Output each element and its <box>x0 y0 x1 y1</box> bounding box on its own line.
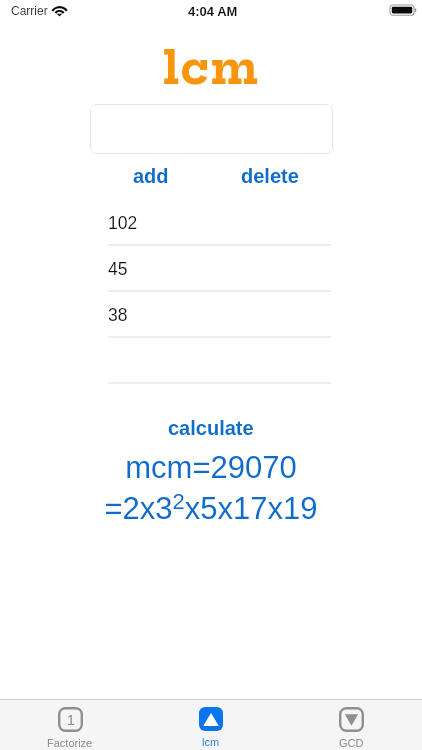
staticText: =2x32x5x17x19 <box>104 489 318 526</box>
button[interactable]: calculate <box>151 414 271 442</box>
button[interactable]: 45 <box>108 246 331 292</box>
button[interactable] <box>108 338 331 384</box>
button[interactable] <box>90 104 333 154</box>
staticText: Carrier <box>11 4 48 17</box>
staticText: lcm <box>163 41 260 95</box>
staticText: 1 <box>67 712 75 728</box>
staticText: 45 <box>108 259 128 279</box>
button[interactable]: delete <box>230 163 310 189</box>
staticText: 38 <box>108 305 128 325</box>
staticText: 4:04 AM <box>188 4 238 19</box>
button[interactable]: 38 <box>108 292 331 338</box>
other: lcm <box>199 707 223 731</box>
staticText: 102 <box>108 213 138 233</box>
staticText: Factorize <box>47 737 93 749</box>
other: GCD <box>339 707 364 732</box>
button[interactable]: 1 <box>0 700 140 750</box>
button[interactable]: lcm <box>140 700 281 750</box>
button[interactable]: GCD <box>281 700 422 750</box>
staticText: GCD <box>339 737 364 749</box>
staticText: mcm=29070 <box>125 450 297 485</box>
staticText: add <box>133 165 169 187</box>
staticText: calculate <box>168 417 254 439</box>
staticText: lcm <box>202 736 220 748</box>
button[interactable]: 102 <box>108 200 331 246</box>
staticText: delete <box>241 165 299 187</box>
button[interactable]: add <box>110 163 191 189</box>
